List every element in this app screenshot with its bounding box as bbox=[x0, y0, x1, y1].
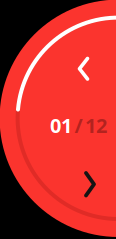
staticText: 12 bbox=[85, 112, 107, 139]
staticText: 01 bbox=[50, 112, 72, 139]
staticText: / bbox=[74, 112, 82, 139]
button[interactable]: Previous bbox=[69, 48, 97, 89]
button[interactable]: Next bbox=[76, 163, 104, 205]
